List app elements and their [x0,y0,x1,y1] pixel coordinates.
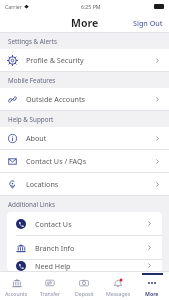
button[interactable]: Deposit [67,272,101,300]
button[interactable]: Messages [101,272,135,300]
staticText: More [71,16,99,30]
button[interactable]: Transfer [33,272,67,300]
staticText: Mobile Features [8,76,56,85]
staticText: Settings & Alerts [8,37,57,46]
staticText: More [145,290,159,297]
staticText: About [26,133,47,143]
button[interactable]: Contact Us / FAQs [0,150,169,172]
button[interactable]: Sign Out [127,14,169,32]
staticText: Locations [26,179,59,189]
button[interactable]: Outside Accounts [0,88,169,110]
staticText: Contact Us / FAQs [26,156,87,166]
button[interactable]: About [0,127,169,149]
button[interactable]: Profile & Security [0,49,169,71]
staticText: Need Help [35,261,71,271]
button[interactable]: Locations [0,173,169,195]
staticText: Deposit [75,290,94,297]
staticText: Outside Accounts [26,94,86,104]
staticText: Help & Support [8,115,54,124]
staticText: Carrier [5,3,22,10]
staticText: 6:25 PM [81,3,101,10]
button[interactable]: Contact Us [7,212,162,235]
staticText: Sign Out [133,18,163,28]
staticText: Transfer [40,290,61,297]
button[interactable]: Branch Info [7,236,162,259]
staticText: Contact Us [35,219,72,229]
staticText: Profile & Security [26,55,84,65]
staticText: Branch Info [35,243,75,253]
button[interactable]: Need Help [7,260,162,271]
button[interactable]: More [135,272,169,300]
staticText: Messages [106,290,131,297]
staticText: Accounts [5,290,28,297]
staticText: Additional Links [8,200,55,209]
button[interactable]: Accounts [0,272,33,300]
